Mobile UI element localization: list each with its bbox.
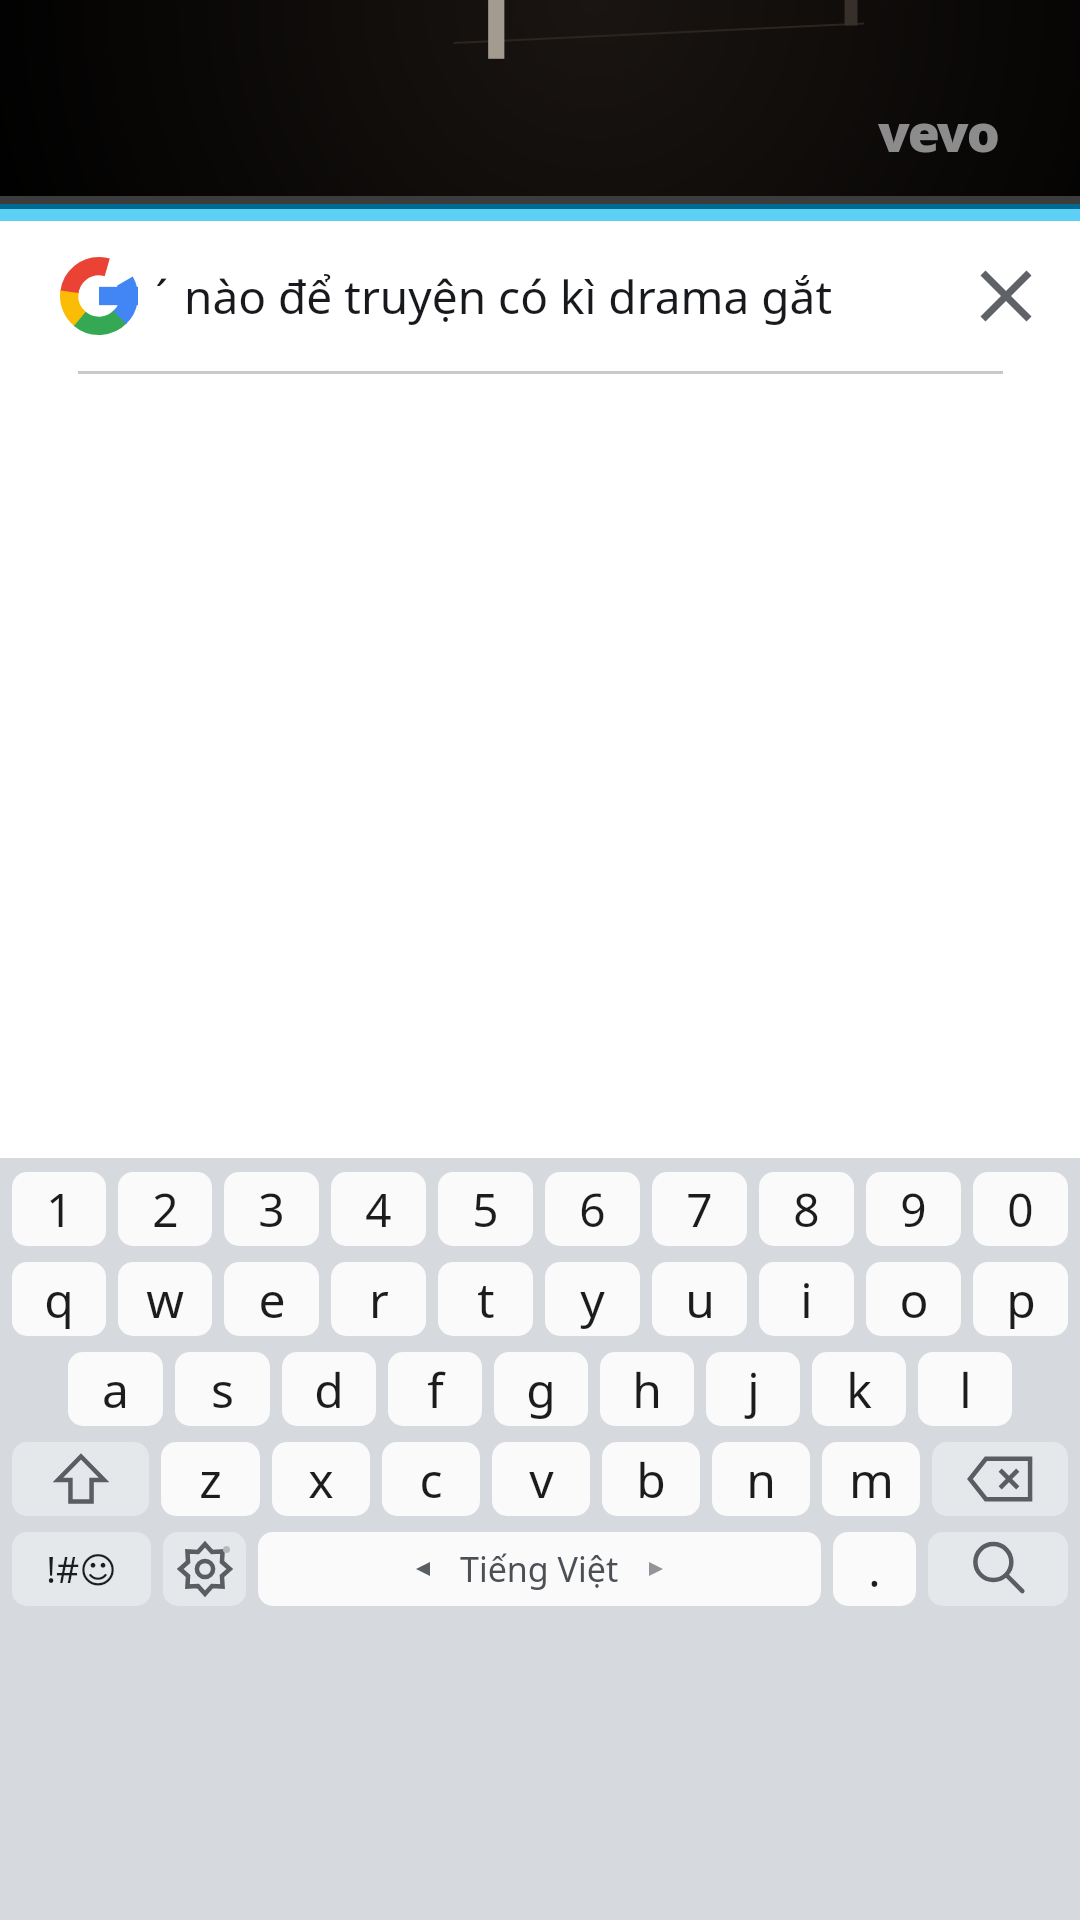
button[interactable]: s	[175, 1352, 270, 1426]
staticText: i	[800, 1267, 813, 1332]
staticText: w	[146, 1267, 184, 1332]
button[interactable]: i	[759, 1262, 854, 1336]
button[interactable]: 5	[438, 1172, 533, 1246]
button[interactable]: a	[68, 1352, 163, 1426]
button[interactable]: z	[161, 1442, 260, 1516]
staticText: c	[419, 1447, 443, 1512]
staticText: r	[369, 1267, 389, 1332]
button[interactable]: o	[866, 1262, 961, 1336]
button[interactable]: 6	[545, 1172, 640, 1246]
button[interactable]: 9	[866, 1172, 961, 1246]
staticText: 8	[793, 1178, 820, 1241]
button[interactable]: 3	[224, 1172, 319, 1246]
button[interactable]: g	[494, 1352, 588, 1426]
button[interactable]: 1	[12, 1172, 106, 1246]
staticText: 1	[46, 1178, 73, 1241]
staticText: b	[636, 1447, 666, 1512]
staticText: .	[868, 1538, 881, 1601]
button[interactable]: x	[272, 1442, 370, 1516]
button[interactable]: m	[822, 1442, 920, 1516]
staticText: v	[529, 1447, 554, 1512]
button[interactable]: n	[712, 1442, 810, 1516]
button[interactable]: k	[812, 1352, 906, 1426]
staticText: k	[846, 1357, 872, 1422]
button[interactable]: d	[282, 1352, 376, 1426]
button[interactable]: f	[388, 1352, 482, 1426]
staticText: t	[477, 1267, 495, 1332]
button[interactable]: c	[382, 1442, 480, 1516]
staticText: 7	[686, 1178, 713, 1241]
button[interactable]: 7	[652, 1172, 747, 1246]
button[interactable]: 8	[759, 1172, 854, 1246]
button[interactable]: Clear search	[948, 238, 1064, 354]
staticText: 5	[472, 1178, 499, 1241]
staticText: g	[526, 1357, 556, 1422]
staticText: y	[580, 1267, 605, 1332]
staticText: x	[308, 1447, 334, 1512]
staticText: u	[685, 1267, 715, 1332]
button[interactable]: y	[545, 1262, 640, 1336]
button[interactable]: .	[833, 1532, 916, 1606]
staticText: 6	[579, 1178, 606, 1241]
button[interactable]: w	[118, 1262, 212, 1336]
staticText: Tiếng Việt	[460, 1546, 619, 1592]
button[interactable]: p	[973, 1262, 1068, 1336]
button[interactable]: 2	[118, 1172, 212, 1246]
staticText: 0	[1007, 1178, 1034, 1241]
staticText: z	[199, 1447, 222, 1512]
button[interactable]: Tiếng Việt	[258, 1532, 821, 1606]
staticText: q	[44, 1267, 74, 1332]
staticText: h	[632, 1357, 662, 1422]
button[interactable]: Shift	[12, 1442, 149, 1516]
button[interactable]: r	[331, 1262, 426, 1336]
button[interactable]: !#☺	[12, 1532, 151, 1606]
button[interactable]: e	[224, 1262, 319, 1336]
staticText: p	[1006, 1267, 1036, 1332]
staticText: j	[747, 1357, 760, 1422]
staticText: d	[314, 1357, 344, 1422]
staticText: f	[427, 1357, 444, 1422]
staticText: 2	[152, 1178, 179, 1241]
button[interactable]: q	[12, 1262, 106, 1336]
staticText: m	[849, 1447, 894, 1512]
button[interactable]: Backspace	[932, 1442, 1068, 1516]
button[interactable]: t	[438, 1262, 533, 1336]
staticText: o	[899, 1267, 929, 1332]
button[interactable]: 0	[973, 1172, 1068, 1246]
staticText: s	[211, 1357, 234, 1422]
staticText: l	[959, 1357, 972, 1422]
staticText: 4	[365, 1178, 392, 1241]
button[interactable]: Keyboard settings	[163, 1532, 246, 1606]
button[interactable]: u	[652, 1262, 747, 1336]
button[interactable]: h	[600, 1352, 694, 1426]
button[interactable]: l	[918, 1352, 1012, 1426]
staticText: a	[102, 1357, 129, 1422]
button[interactable]: b	[602, 1442, 700, 1516]
staticText: 9	[900, 1178, 927, 1241]
button[interactable]: Search	[928, 1532, 1068, 1606]
staticText: e	[258, 1267, 286, 1332]
staticText: vevo	[878, 96, 998, 167]
staticText: n	[746, 1447, 776, 1512]
staticText: ́ nào để truyện có kì drama gắt	[172, 265, 833, 328]
button[interactable]: 4	[331, 1172, 426, 1246]
button[interactable]: j	[706, 1352, 800, 1426]
button[interactable]: v	[492, 1442, 590, 1516]
staticText: !#☺	[46, 1545, 117, 1594]
staticText: 3	[258, 1178, 285, 1241]
